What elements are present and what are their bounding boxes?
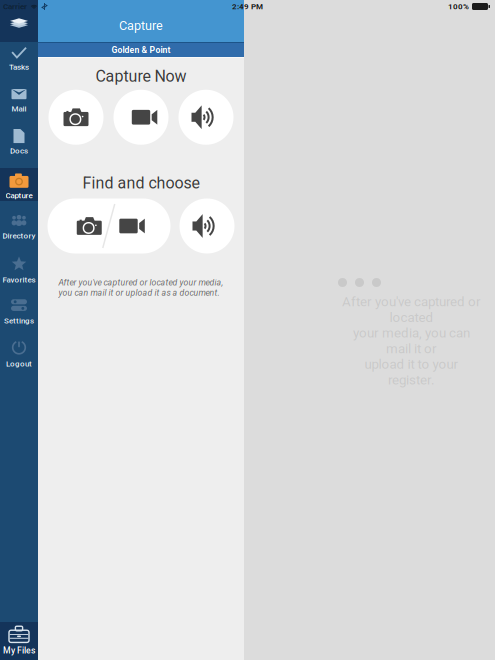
button[interactable]: My Files bbox=[0, 622, 38, 660]
button[interactable]: Capture bbox=[0, 168, 38, 210]
staticText: 100% bbox=[448, 2, 469, 11]
staticText: Capture bbox=[119, 18, 163, 33]
button[interactable]: Docs bbox=[0, 126, 38, 168]
staticText: register. bbox=[388, 372, 435, 388]
button[interactable]: Settings bbox=[0, 294, 38, 336]
button[interactable]: Logout bbox=[0, 336, 38, 378]
button[interactable]: Record video bbox=[113, 90, 168, 145]
staticText: your media, you can bbox=[353, 325, 470, 341]
button[interactable]: Tasks bbox=[0, 42, 38, 84]
button[interactable]: Take photo bbox=[48, 90, 103, 145]
button[interactable]: Record audio bbox=[178, 90, 233, 145]
staticText: Directory bbox=[2, 231, 35, 241]
staticText: Docs bbox=[10, 146, 28, 155]
staticText: 2:49 PM bbox=[232, 2, 263, 11]
staticText: Capture Now bbox=[95, 67, 186, 86]
staticText: Capture bbox=[5, 191, 32, 200]
staticText: mail it or bbox=[386, 341, 437, 356]
button[interactable]: Mail bbox=[0, 84, 38, 126]
staticText: Golden & Point bbox=[111, 45, 170, 55]
staticText: After you've captured or located your me… bbox=[58, 277, 223, 298]
button[interactable]: Menu bbox=[0, 0, 38, 42]
staticText: Find and choose bbox=[82, 174, 199, 193]
staticText: Settings bbox=[4, 316, 34, 326]
staticText: upload it to your bbox=[364, 356, 458, 372]
button[interactable]: Directory bbox=[0, 210, 38, 252]
staticText: Mail bbox=[11, 104, 26, 114]
staticText: My Files bbox=[3, 645, 35, 656]
staticText: Logout bbox=[6, 359, 32, 368]
button[interactable]: Choose audio bbox=[179, 198, 234, 253]
staticText: Tasks bbox=[9, 62, 29, 72]
staticText: After you've captured or bbox=[342, 294, 481, 310]
staticText: Favorites bbox=[2, 275, 35, 285]
button[interactable]: Favorites bbox=[0, 252, 38, 294]
staticText: Carrier bbox=[3, 2, 27, 11]
button[interactable]: Choose photo or video bbox=[47, 198, 170, 253]
staticText: located bbox=[389, 310, 433, 325]
